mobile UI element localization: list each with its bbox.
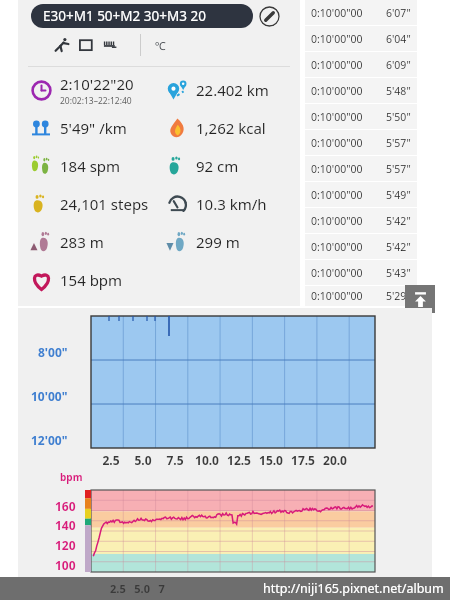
button[interactable]: Activity type (54, 37, 70, 53)
staticText: 7.5 (160, 452, 190, 468)
staticText: 24,101 steps (60, 194, 149, 214)
staticText: 0:10'00"00 (311, 6, 363, 20)
staticText: E30+M1 50+M2 30+M3 20 (43, 7, 206, 25)
staticText: 154 bpm (60, 270, 123, 290)
staticText: 0:10'00"00 (311, 289, 363, 303)
staticText: 283 m (60, 232, 104, 252)
staticText: 2.5 5.0 7 (110, 581, 165, 596)
button[interactable]: 92 cm (164, 147, 239, 185)
button[interactable]: 0:10'00"00 (305, 286, 417, 306)
staticText: 100 (55, 557, 76, 573)
staticText: 5'49" /km (60, 118, 127, 138)
staticText: 0:10'00"00 (311, 188, 363, 202)
staticText: 5'50" (386, 110, 411, 124)
staticText: 20:02:13–22:12:40 (60, 95, 132, 107)
button[interactable]: Weather (102, 37, 118, 53)
button[interactable]: 184 spm (28, 147, 164, 185)
staticText: 184 spm (60, 156, 121, 176)
button[interactable]: Screen mode (78, 37, 94, 53)
staticText: 299 m (196, 232, 240, 252)
staticText: bpm (60, 470, 83, 484)
staticText: 5'42" (386, 214, 411, 228)
staticText: 5'43" (386, 266, 411, 280)
staticText: 12'00" (31, 432, 68, 448)
button[interactable]: 0:10'00"00 (305, 130, 417, 155)
button[interactable]: 299 m (164, 223, 240, 261)
staticText: 10.0 (192, 452, 222, 468)
staticText: 140 (55, 517, 76, 533)
staticText: ℃ (155, 38, 166, 53)
staticText: 2.5 (96, 452, 126, 468)
staticText: 0:10'00"00 (311, 32, 363, 46)
staticText: 5'29" (386, 289, 411, 303)
staticText: 5'57" (386, 136, 411, 150)
button[interactable]: Edit (258, 5, 280, 27)
button[interactable]: 10.3 km/h (164, 185, 267, 223)
staticText: 10.3 km/h (196, 194, 267, 214)
button[interactable]: 0:10'00"00 (305, 78, 417, 103)
staticText: 17.5 (288, 452, 318, 468)
button[interactable]: 22.402 km (164, 71, 269, 109)
button[interactable]: 283 m (28, 223, 164, 261)
button[interactable]: 5'49" /km (28, 109, 164, 147)
button[interactable]: 0:10'00"00 (305, 260, 417, 285)
button[interactable]: 0:10'00"00 (305, 182, 417, 207)
staticText: 0:10'00"00 (311, 84, 363, 98)
staticText: 92 cm (196, 156, 239, 176)
staticText: 5'49" (386, 188, 411, 202)
staticText: 0:10'00"00 (311, 162, 363, 176)
staticText: 0:10'00"00 (311, 240, 363, 254)
button[interactable]: 1,262 kcal (164, 109, 266, 147)
staticText: 15.0 (256, 452, 286, 468)
button[interactable]: 2:10'22"20 (28, 71, 164, 109)
staticText: 0:10'00"00 (311, 58, 363, 72)
button[interactable]: 24,101 steps (28, 185, 164, 223)
staticText: 6'07" (386, 6, 411, 20)
staticText: 160 (55, 498, 76, 514)
staticText: 0:10'00"00 (311, 110, 363, 124)
staticText: 12.5 (224, 452, 254, 468)
button[interactable]: 0:10'00"00 (305, 0, 417, 25)
staticText: 0:10'00"00 (311, 136, 363, 150)
staticText: 5.0 (128, 452, 158, 468)
button[interactable]: 154 bpm (28, 261, 164, 299)
button[interactable]: E30+M1 50+M2 30+M3 20 (31, 4, 253, 28)
staticText: 6'04" (386, 32, 411, 46)
button[interactable]: 0:10'00"00 (305, 234, 417, 259)
staticText: 10'00" (31, 388, 68, 404)
staticText: 6'09" (386, 58, 411, 72)
staticText: 22.402 km (196, 80, 269, 100)
button[interactable]: 0:10'00"00 (305, 52, 417, 77)
staticText: 5'48" (386, 84, 411, 98)
staticText: http://niji165.pixnet.net/album (263, 580, 444, 597)
staticText: 0:10'00"00 (311, 266, 363, 280)
button[interactable]: 0:10'00"00 (305, 208, 417, 233)
button[interactable]: 0:10'00"00 (305, 26, 417, 51)
staticText: 0:10'00"00 (311, 214, 363, 228)
staticText: 120 (55, 537, 76, 553)
staticText: 5'57" (386, 162, 411, 176)
button[interactable]: 0:10'00"00 (305, 104, 417, 129)
staticText: 1,262 kcal (196, 118, 266, 138)
button[interactable]: Scroll to top (405, 285, 435, 313)
staticText: 5'42" (386, 240, 411, 254)
staticText: 8'00" (38, 344, 68, 360)
staticText: 2:10'22"20 (60, 74, 134, 94)
button[interactable]: 0:10'00"00 (305, 156, 417, 181)
staticText: 20.0 (320, 452, 350, 468)
